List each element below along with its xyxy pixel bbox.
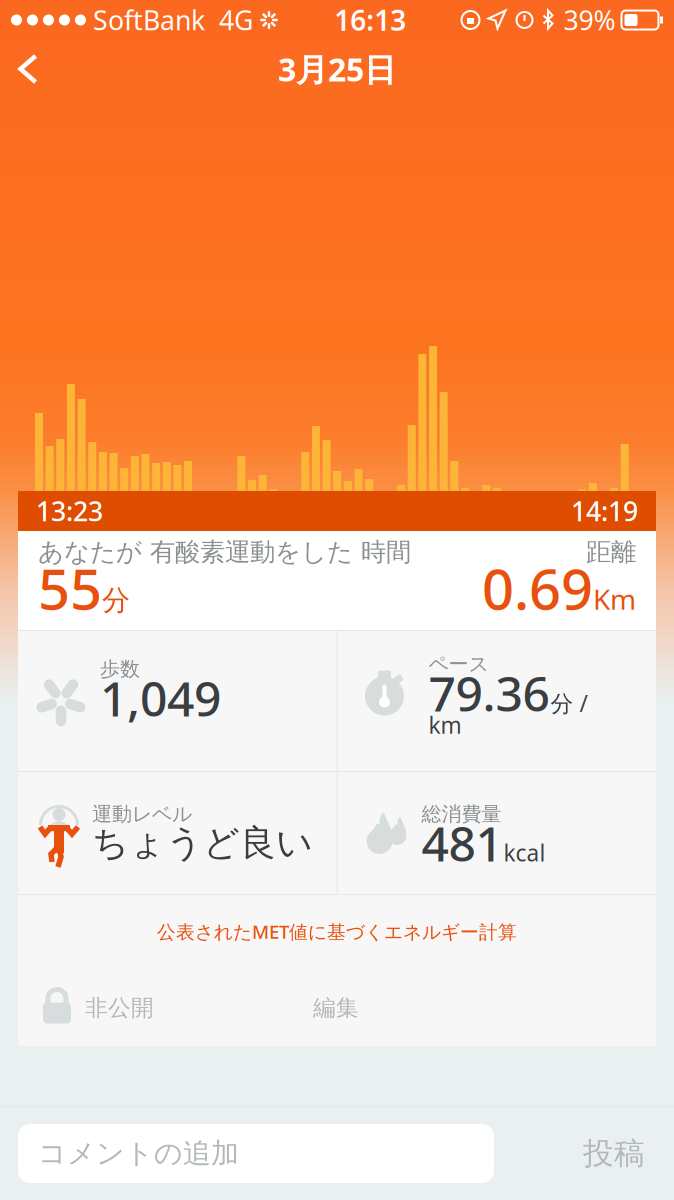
staticText: 0.69 [482, 551, 593, 625]
staticText: 13:23 [36, 493, 103, 529]
staticText: 歩数 [100, 657, 140, 681]
button[interactable]: 非公開 [18, 984, 154, 1032]
button[interactable]: Back [0, 40, 56, 98]
staticText: ペース [428, 652, 488, 676]
button[interactable]: 編集 [297, 984, 375, 1032]
button[interactable]: 投稿 [554, 1124, 674, 1183]
staticText: ちょうど良い [92, 821, 313, 865]
staticText: 総消費量 [421, 802, 501, 826]
staticText: 投稿 [583, 1135, 645, 1172]
staticText: 14:19 [571, 493, 638, 529]
staticText: 公表されたMET値に基づくエネルギー計算 [157, 919, 517, 944]
staticText: km [428, 710, 461, 740]
staticText: 79.36 [428, 661, 549, 725]
staticText: Km [593, 580, 636, 617]
staticText: 16:13 [334, 1, 406, 39]
button[interactable]: コメントの追加 [18, 1124, 494, 1183]
staticText: 4G [205, 2, 253, 38]
staticText: 分 [102, 583, 130, 618]
staticText: 1,049 [100, 666, 221, 730]
staticText: SoftBank [86, 2, 205, 38]
staticText: 非公開 [85, 994, 154, 1022]
staticText: 481 [421, 811, 502, 875]
staticText: 分 / [550, 688, 587, 718]
staticText: kcal [503, 838, 545, 868]
staticText: 運動レベル [92, 802, 192, 826]
staticText: 55 [38, 551, 102, 625]
staticText: 3月25日 [278, 48, 396, 90]
staticText: 距離 [586, 536, 636, 567]
staticText: あなたが 有酸素運動をした 時間 [38, 536, 411, 567]
staticText: 編集 [313, 994, 359, 1022]
staticText: コメントの追加 [38, 1136, 239, 1171]
staticText: 39% [563, 2, 615, 38]
